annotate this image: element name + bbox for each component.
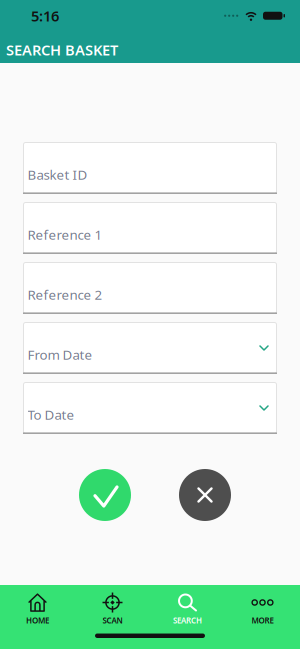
- staticText: HOME: [26, 615, 49, 626]
- staticText: SEARCH: [173, 615, 202, 626]
- staticText: From Date: [27, 346, 92, 363]
- button[interactable]: From Date: [23, 322, 277, 374]
- staticText: Reference 2: [27, 286, 102, 303]
- button[interactable]: MORE: [225, 585, 300, 635]
- button[interactable]: Reference 2: [23, 262, 277, 314]
- staticText: To Date: [27, 406, 74, 423]
- button[interactable]: Reference 1: [23, 202, 277, 254]
- button[interactable]: To Date: [23, 382, 277, 434]
- button[interactable]: SEARCH: [150, 585, 225, 635]
- staticText: Reference 1: [27, 226, 102, 243]
- button[interactable]: Basket ID: [23, 142, 277, 194]
- button[interactable]: Search: [79, 469, 131, 521]
- button[interactable]: HOME: [0, 585, 75, 635]
- button[interactable]: Clear: [179, 469, 231, 521]
- staticText: SCAN: [102, 615, 122, 626]
- staticText: MORE: [251, 615, 273, 626]
- staticText: 5:16: [31, 6, 59, 25]
- staticText: Basket ID: [27, 166, 87, 183]
- staticText: SEARCH BASKET: [6, 40, 118, 59]
- button[interactable]: SCAN: [75, 585, 150, 635]
